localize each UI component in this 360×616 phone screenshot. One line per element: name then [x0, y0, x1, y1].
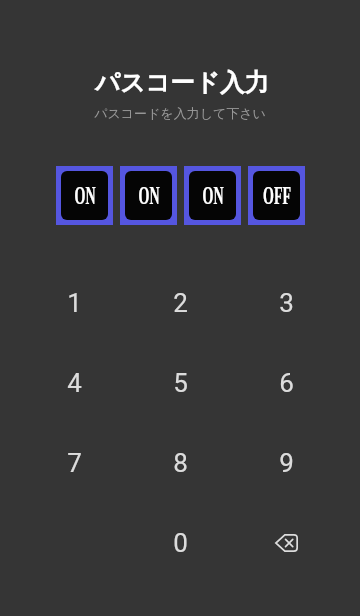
- staticText: ON: [191, 182, 235, 210]
- staticText: 6: [279, 368, 294, 398]
- staticText: 2: [173, 288, 188, 318]
- button[interactable]: OFF: [248, 166, 305, 225]
- staticText: 3: [279, 288, 294, 318]
- button[interactable]: 9: [233, 423, 339, 503]
- button[interactable]: 7: [21, 423, 127, 503]
- staticText: パスコード入力: [2, 67, 360, 98]
- button[interactable]: ON: [56, 166, 113, 225]
- staticText: 8: [173, 448, 188, 478]
- staticText: 0: [173, 528, 188, 558]
- button[interactable]: 0: [127, 503, 233, 583]
- staticText: 4: [67, 368, 82, 398]
- button[interactable]: ON: [184, 166, 241, 225]
- button[interactable]: 5: [127, 343, 233, 423]
- staticText: 1: [67, 288, 82, 318]
- staticText: OFF: [255, 182, 299, 210]
- button[interactable]: 8: [127, 423, 233, 503]
- staticText: ON: [127, 182, 171, 210]
- button[interactable]: 1: [21, 263, 127, 343]
- button[interactable]: ON: [120, 166, 177, 225]
- button[interactable]: Backspace: [233, 503, 339, 583]
- staticText: 5: [173, 368, 188, 398]
- button[interactable]: 6: [233, 343, 339, 423]
- button[interactable]: 2: [127, 263, 233, 343]
- button[interactable]: 3: [233, 263, 339, 343]
- button[interactable]: 4: [21, 343, 127, 423]
- staticText: ON: [63, 182, 107, 210]
- staticText: 7: [67, 448, 82, 478]
- staticText: 9: [279, 448, 294, 478]
- staticText: パスコードを入力して下さい: [0, 105, 360, 121]
